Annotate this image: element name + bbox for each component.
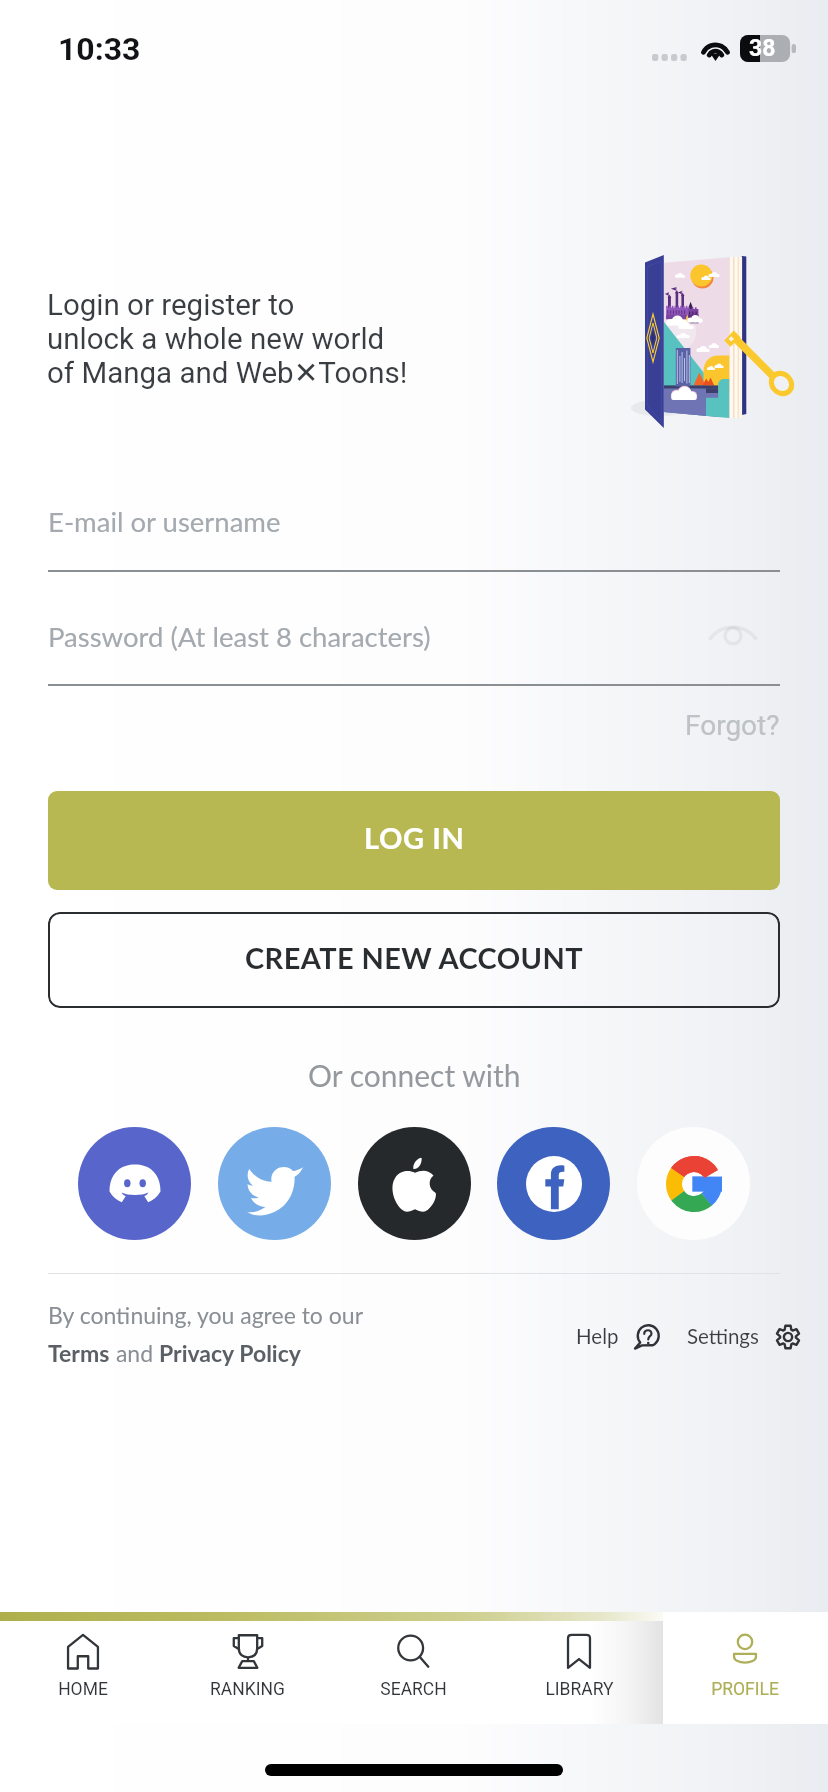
button[interactable]: Sign in with Google: [637, 1127, 750, 1240]
staticText: and: [110, 1339, 159, 1367]
button[interactable]: PROFILE: [662, 1621, 828, 1721]
staticText: SEARCH: [380, 1679, 447, 1700]
staticText: Login or register to unlock a whole new …: [47, 288, 408, 390]
staticText: Help: [576, 1324, 619, 1349]
staticText: E-mail or username: [48, 505, 281, 538]
staticText: PROFILE: [711, 1679, 779, 1700]
button[interactable]: Sign in with Facebook: [497, 1127, 610, 1240]
button[interactable]: SEARCH: [330, 1621, 496, 1721]
staticText: 38: [749, 35, 776, 62]
staticText: RANKING: [210, 1679, 285, 1700]
staticText: LOG IN: [364, 820, 465, 855]
button[interactable]: CREATE NEW ACCOUNT: [48, 912, 780, 1008]
button[interactable]: LOG IN: [48, 791, 780, 890]
staticText: Or connect with: [308, 1057, 521, 1093]
button[interactable]: RANKING: [165, 1621, 330, 1721]
button[interactable]: LIBRARY: [496, 1621, 662, 1721]
button[interactable]: Help: [576, 1324, 660, 1349]
button[interactable]: Sign in with Apple: [358, 1127, 471, 1240]
staticText: Forgot?: [685, 709, 780, 742]
button[interactable]: Settings: [687, 1324, 800, 1349]
staticText: Settings: [687, 1324, 759, 1349]
button[interactable]: Privacy Policy: [159, 1339, 301, 1367]
staticText: CREATE NEW ACCOUNT: [245, 940, 584, 975]
button[interactable]: Sign in with Discord: [78, 1127, 191, 1240]
staticText: HOME: [58, 1679, 108, 1700]
button[interactable]: HOME: [0, 1621, 165, 1721]
button[interactable]: Terms: [48, 1339, 110, 1367]
staticText: 10:33: [58, 30, 141, 68]
button[interactable]: Forgot?: [675, 703, 790, 748]
staticText: Password (At least 8 characters): [48, 620, 431, 653]
button[interactable]: Show password: [705, 615, 761, 655]
staticText: By continuing, you agree to our: [48, 1301, 364, 1329]
button[interactable]: Sign in with Twitter: [218, 1127, 331, 1240]
staticText: LIBRARY: [545, 1679, 614, 1700]
